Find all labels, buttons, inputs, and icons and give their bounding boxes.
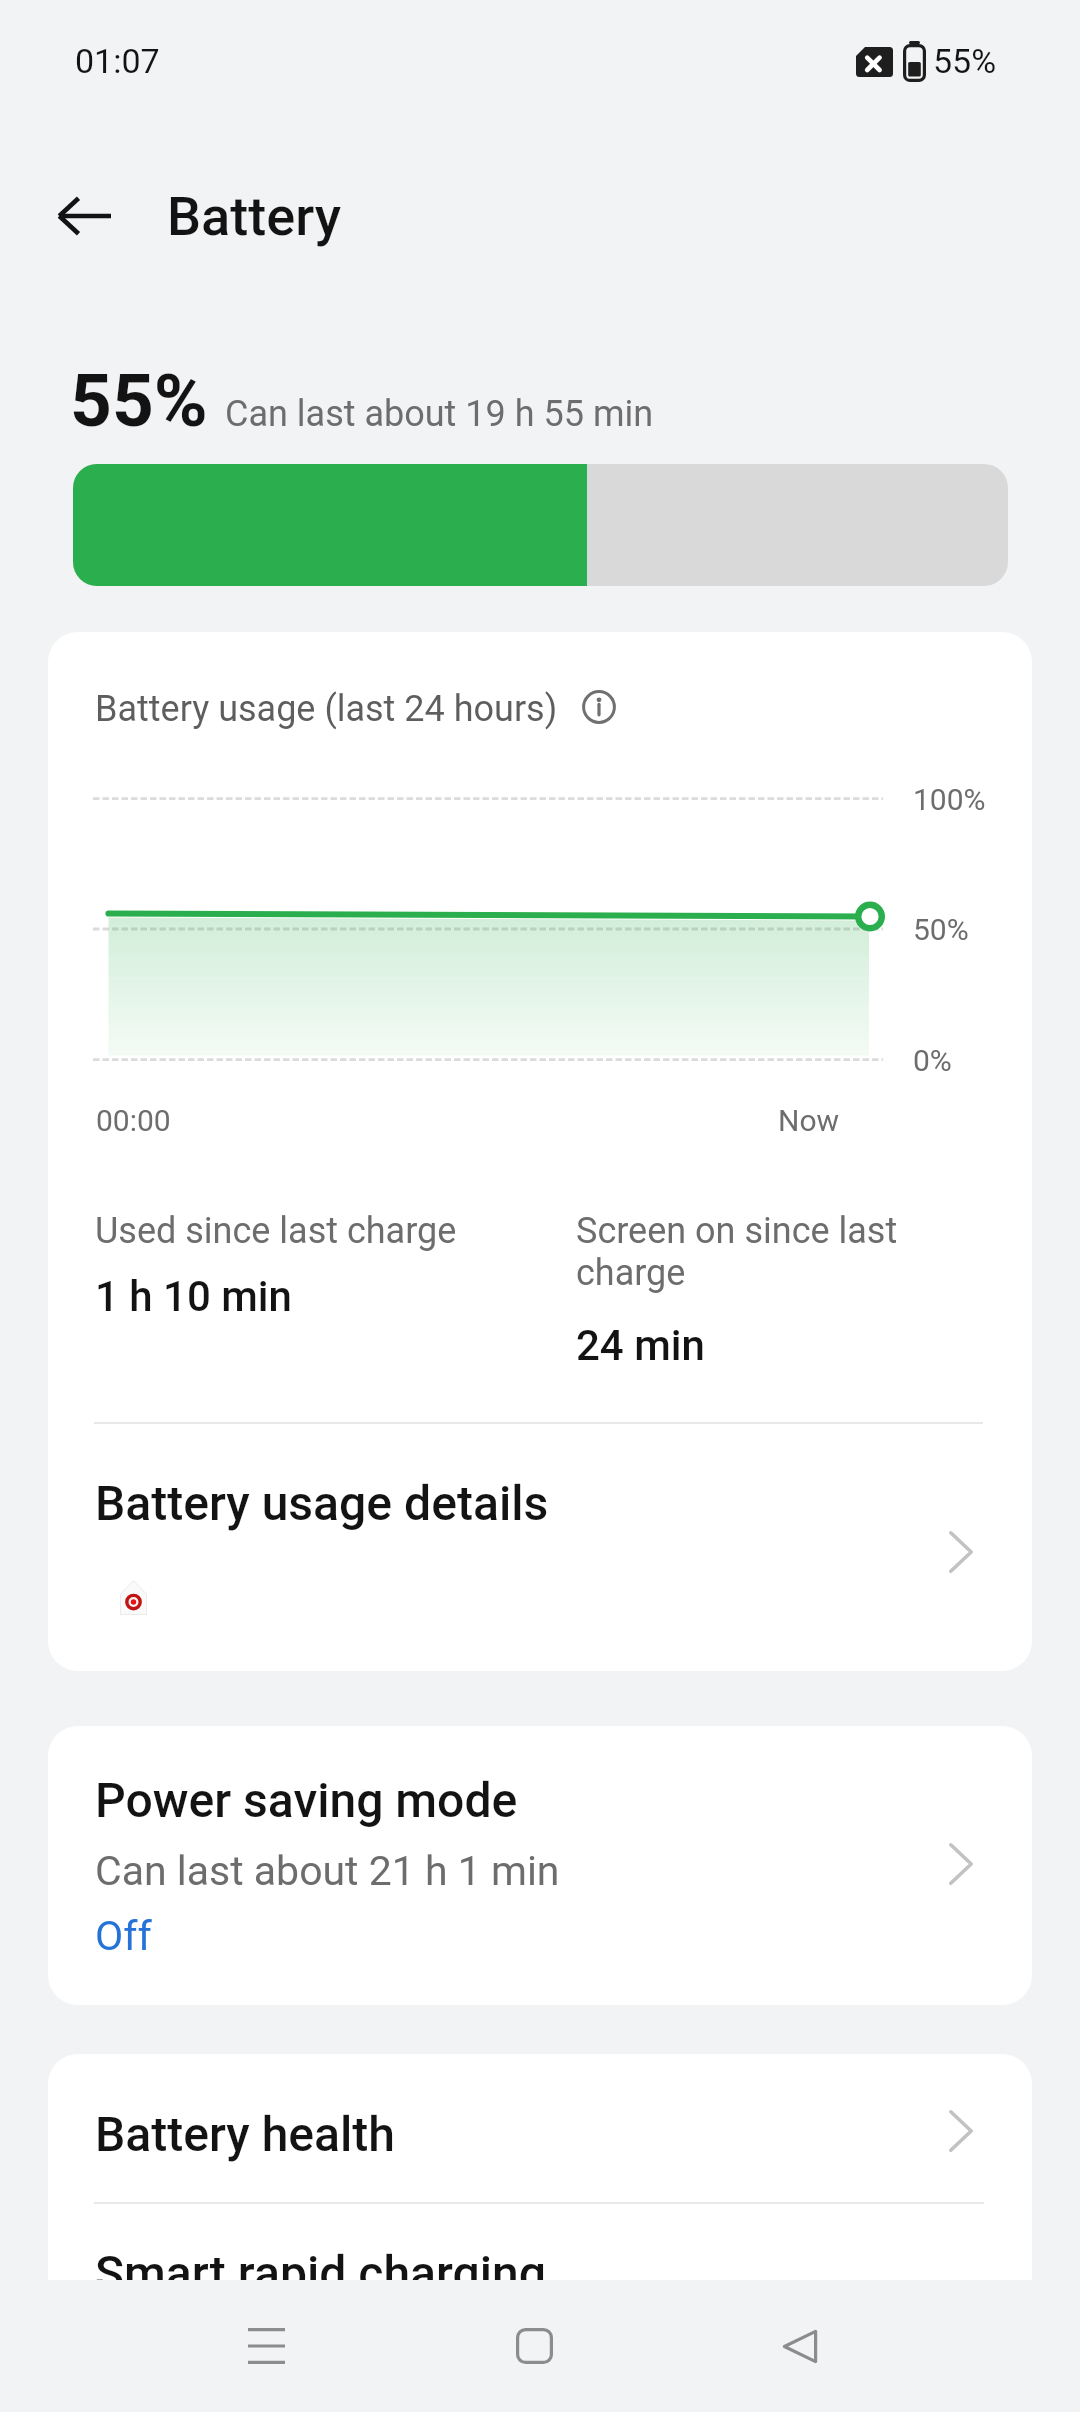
staticText: Smart rapid charging	[95, 2245, 546, 2280]
staticText: 24 min	[576, 1321, 705, 1370]
staticText: Screen on since last charge	[576, 1210, 911, 1294]
staticText: 55%	[933, 41, 997, 81]
staticText: Battery usage (last 24 hours)	[95, 688, 558, 730]
button[interactable]: Smart rapid charging	[48, 2202, 1032, 2280]
button[interactable]: About battery usage	[582, 690, 616, 724]
staticText: 100%	[913, 782, 986, 817]
button[interactable]: Home	[474, 2290, 594, 2402]
button[interactable]: Back	[34, 166, 134, 266]
staticText: 01:07	[75, 41, 160, 81]
staticText: Power saving mode	[95, 1772, 518, 1828]
button[interactable]: Battery usage details	[48, 1422, 1032, 1671]
staticText: 0%	[913, 1043, 952, 1078]
button[interactable]: Recent apps	[206, 2290, 326, 2402]
staticText: Now	[778, 1103, 840, 1138]
button[interactable]: Back	[740, 2290, 860, 2402]
staticText: Can last about 19 h 55 min	[225, 393, 654, 435]
staticText: 1 h 10 min	[95, 1272, 292, 1321]
staticText: Battery health	[95, 2106, 395, 2162]
staticText: Can last about 21 h 1 min	[95, 1847, 560, 1895]
staticText: 00:00	[96, 1103, 171, 1138]
staticText: Battery usage details	[95, 1475, 549, 1531]
staticText: Off	[95, 1912, 152, 1960]
button[interactable]: Power saving mode	[48, 1726, 1032, 2005]
staticText: 50%	[913, 912, 969, 947]
staticText: Battery	[167, 185, 342, 248]
staticText: Used since last charge	[95, 1210, 457, 1252]
button[interactable]: Battery health	[48, 2054, 1032, 2202]
staticText: 55%	[70, 358, 208, 444]
